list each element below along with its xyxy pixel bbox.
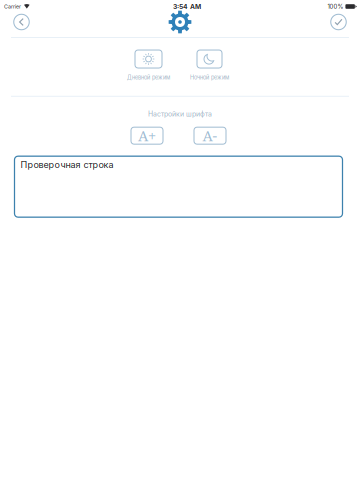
staticText: Проверочная строка — [20, 159, 113, 170]
button[interactable]: Дневной режим — [127, 50, 170, 81]
button[interactable]: A- — [194, 127, 226, 144]
staticText: Ночной режим — [190, 74, 229, 81]
staticText: A- — [202, 126, 217, 146]
button[interactable]: Ночной режим — [190, 50, 229, 81]
staticText: 100% — [327, 3, 343, 10]
staticText: Настройки шрифта — [148, 110, 212, 118]
button[interactable]: Back — [8, 9, 35, 35]
staticText: 3:54 AM — [173, 2, 201, 11]
staticText: Carrier — [4, 3, 21, 10]
staticText: Дневной режим — [127, 74, 170, 81]
staticText: A+ — [138, 126, 156, 146]
button[interactable]: Confirm — [325, 9, 352, 35]
button[interactable]: A+ — [131, 127, 163, 144]
